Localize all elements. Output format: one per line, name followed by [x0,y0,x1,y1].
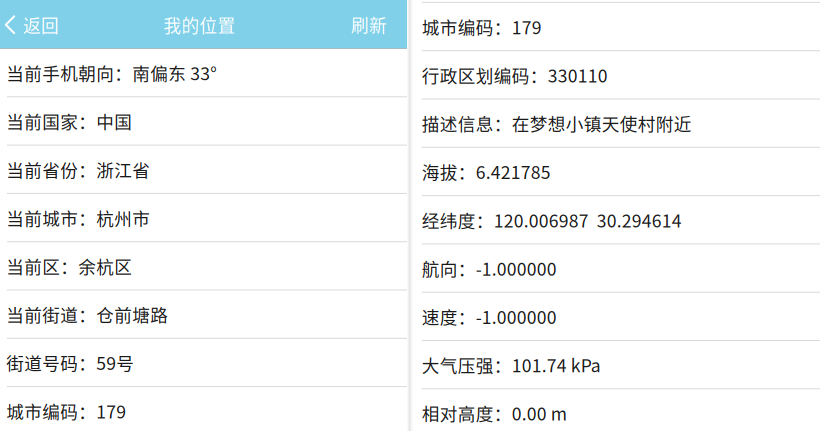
button[interactable]: 当前国家：中国 [0,97,407,145]
staticText: 我的位置 [163,12,235,38]
staticText: 城市编码：179 [422,14,542,39]
staticText: 返回 [23,12,59,38]
staticText: 大气压强：101.74 kPa [422,352,601,377]
staticText: 当前城市：杭州市 [6,205,150,230]
staticText: 航向：-1.000000 [422,255,557,281]
button[interactable]: 当前省份：浙江省 [0,146,407,193]
button[interactable]: 描述信息：在梦想小镇天使村附近 [407,99,820,147]
staticText: 经纬度：120.006987 30.294614 [422,207,682,232]
staticText: 街道号码：59号 [6,350,134,375]
button[interactable]: 航向：-1.000000 [407,244,820,292]
button[interactable]: 当前街道：仓前塘路 [0,290,407,338]
button[interactable]: 大气压强：101.74 kPa [407,341,820,388]
button[interactable]: 返回 [0,0,69,48]
button[interactable]: 当前区：余杭区 [0,242,407,289]
staticText: 当前省份：浙江省 [6,156,150,182]
button[interactable]: 相对高度：0.00 m [407,389,820,431]
button[interactable]: 行政区划编码：330110 [407,51,820,98]
staticText: 海拔：6.421785 [422,159,551,184]
staticText: 城市编码：179 [6,398,126,423]
button[interactable]: 经纬度：120.006987 30.294614 [407,196,820,243]
staticText: 刷新 [351,12,387,38]
staticText: 速度：-1.000000 [422,304,557,329]
button[interactable]: 城市编码：179 [0,387,407,431]
button[interactable]: 速度：-1.000000 [407,293,820,340]
button[interactable]: 当前手机朝向：南偏东 33° [0,49,407,96]
staticText: 当前街道：仓前塘路 [6,301,168,327]
staticText: 行政区划编码：330110 [422,62,608,88]
button[interactable]: 城市编码：179 [407,3,820,50]
staticText: 当前手机朝向：南偏东 33° [6,60,217,85]
button[interactable]: 街道号码：59号 [0,339,407,386]
staticText: 描述信息：在梦想小镇天使村附近 [422,110,692,136]
button[interactable]: 当前城市：杭州市 [0,194,407,241]
staticText: 当前区：余杭区 [6,253,132,279]
button[interactable]: 海拔：6.421785 [407,148,820,195]
staticText: 当前国家：中国 [6,108,132,134]
button[interactable]: 刷新 [339,0,407,48]
staticText: 相对高度：0.00 m [422,400,567,426]
